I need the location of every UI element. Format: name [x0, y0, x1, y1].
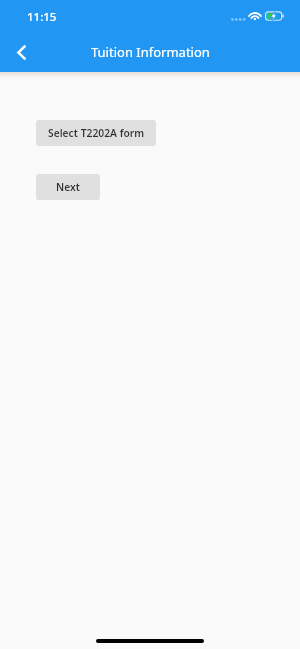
button[interactable]: Select T2202A form — [36, 120, 156, 146]
staticText: Tuition Information — [91, 43, 210, 61]
staticText: Select T2202A form — [48, 126, 145, 140]
staticText: Next — [56, 180, 80, 194]
button[interactable]: Back — [0, 32, 43, 72]
button[interactable]: Next — [36, 174, 100, 200]
staticText: 11:15 — [27, 9, 57, 25]
